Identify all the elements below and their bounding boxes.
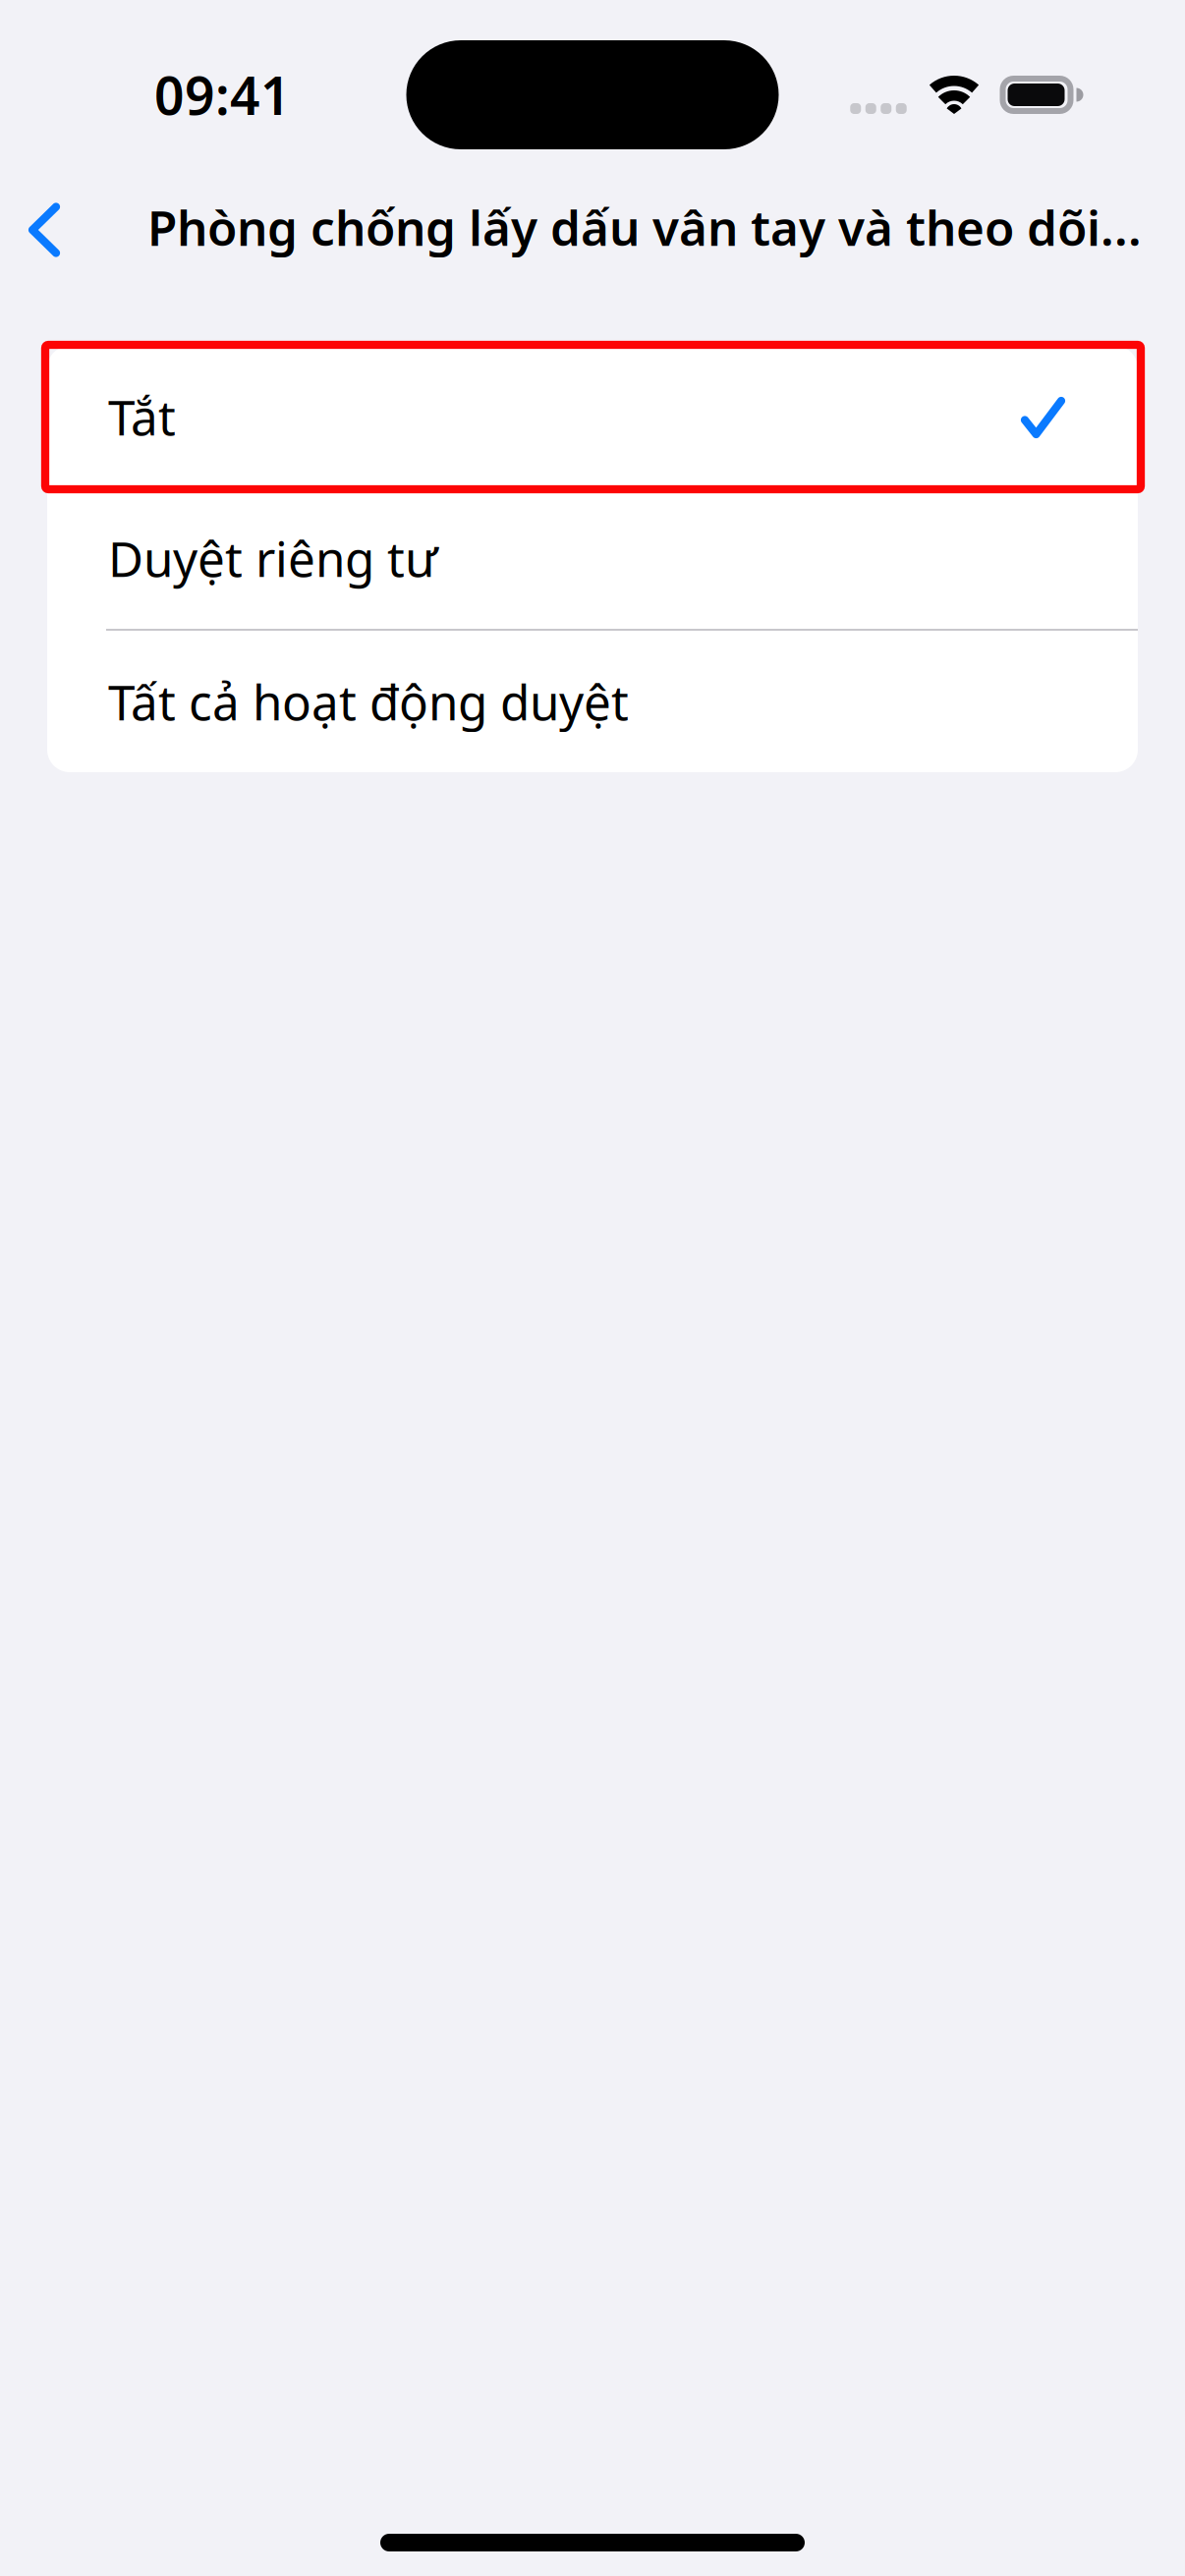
staticText: Phòng chống lấy dấu vân tay và theo dõi.… xyxy=(147,195,1142,259)
button[interactable]: Back xyxy=(0,170,147,284)
button[interactable]: Duyệt riêng tư xyxy=(47,487,1138,629)
staticText: Duyệt riêng tư xyxy=(108,526,437,590)
button[interactable]: Tắt xyxy=(47,346,1138,487)
staticText: 09:41 xyxy=(154,60,291,129)
staticText: Tắt xyxy=(108,384,176,449)
button[interactable]: Tất cả hoạt động duyệt xyxy=(47,631,1138,772)
staticText: Tất cả hoạt động duyệt xyxy=(108,669,629,734)
